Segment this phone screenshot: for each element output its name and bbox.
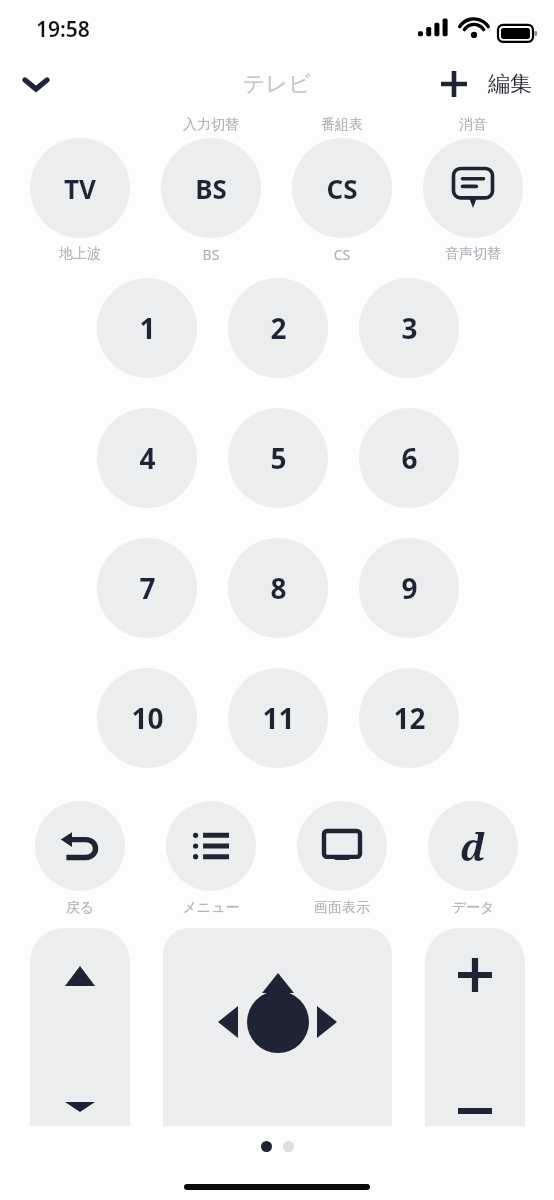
- staticText: 12: [393, 699, 426, 737]
- staticText: データ: [413, 899, 533, 917]
- button[interactable]: Up: [255, 960, 301, 1006]
- staticText: 11: [262, 699, 295, 737]
- button[interactable]: Volume up down: [425, 928, 525, 1126]
- button[interactable]: 10: [97, 668, 197, 768]
- staticText: 3: [401, 309, 418, 347]
- staticText: d: [460, 820, 486, 872]
- button[interactable]: 3: [359, 278, 459, 378]
- button[interactable]: Data: [428, 801, 518, 891]
- staticText: 編集: [488, 70, 532, 98]
- button[interactable]: BS: [161, 138, 261, 238]
- button[interactable]: 12: [359, 668, 459, 768]
- staticText: 2: [270, 309, 287, 347]
- button[interactable]: Right: [304, 999, 350, 1045]
- staticText: TV: [64, 171, 96, 206]
- button[interactable]: CS: [292, 138, 392, 238]
- staticText: CS: [326, 171, 358, 206]
- staticText: 9: [401, 569, 418, 607]
- staticText: CS: [282, 245, 402, 264]
- button[interactable]: 5: [228, 408, 328, 508]
- staticText: 戻る: [20, 899, 140, 917]
- button[interactable]: 11: [228, 668, 328, 768]
- button[interactable]: Collapse: [14, 62, 58, 106]
- other: Back: [60, 830, 100, 862]
- staticText: 10: [131, 699, 164, 737]
- button[interactable]: 編集: [484, 64, 536, 104]
- staticText: 画面表示: [282, 899, 402, 917]
- button[interactable]: TV: [30, 138, 130, 238]
- staticText: 地上波: [20, 245, 140, 263]
- button[interactable]: Back: [35, 801, 125, 891]
- staticText: 音声切替: [413, 245, 533, 263]
- staticText: BS: [195, 171, 227, 206]
- button[interactable]: Channel up down: [30, 928, 130, 1126]
- staticText: 19:58: [36, 15, 90, 44]
- button[interactable]: 8: [228, 538, 328, 638]
- button[interactable]: Menu: [166, 801, 256, 891]
- button[interactable]: Left: [205, 999, 251, 1045]
- staticText: 4: [139, 439, 156, 477]
- staticText: 7: [139, 569, 156, 607]
- staticText: 6: [401, 439, 418, 477]
- button[interactable]: OK: [247, 991, 309, 1053]
- button[interactable]: Add: [432, 62, 476, 106]
- other: Data: [460, 820, 486, 872]
- button[interactable]: 9: [359, 538, 459, 638]
- button[interactable]: 4: [97, 408, 197, 508]
- button[interactable]: Screen display: [297, 801, 387, 891]
- staticText: BS: [151, 245, 271, 264]
- staticText: 1: [139, 309, 156, 347]
- other: Screen display: [322, 829, 362, 863]
- button[interactable]: 6: [359, 408, 459, 508]
- staticText: 消音: [413, 116, 533, 134]
- staticText: 8: [270, 569, 287, 607]
- staticText: メニュー: [151, 899, 271, 917]
- button[interactable]: 2: [228, 278, 328, 378]
- other: Audio switch: [452, 167, 494, 209]
- button[interactable]: 1: [97, 278, 197, 378]
- staticText: 番組表: [282, 116, 402, 134]
- other: Menu: [193, 832, 229, 860]
- staticText: テレビ: [243, 70, 311, 98]
- staticText: 5: [270, 439, 287, 477]
- button[interactable]: 7: [97, 538, 197, 638]
- button[interactable]: Audio switch: [423, 138, 523, 238]
- staticText: 入力切替: [151, 116, 271, 134]
